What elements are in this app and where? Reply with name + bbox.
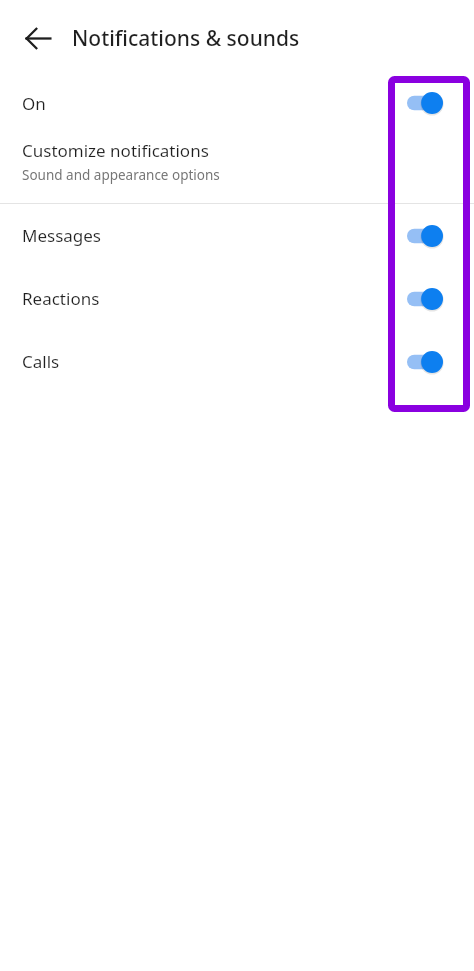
staticText: Sound and appearance options	[22, 166, 220, 184]
button[interactable]: On	[0, 76, 474, 130]
staticText: Reactions	[22, 287, 100, 310]
button[interactable]: Back	[14, 14, 62, 62]
button[interactable]: Calls	[0, 330, 474, 393]
button[interactable]: Customize notifications	[0, 130, 474, 192]
staticText: Notifications & sounds	[72, 24, 300, 53]
staticText: Calls	[22, 350, 60, 373]
staticText: Messages	[22, 224, 102, 247]
button[interactable]: Toggle	[407, 286, 443, 312]
button[interactable]: Toggle	[407, 349, 443, 375]
button[interactable]: Toggle	[407, 223, 443, 249]
staticText: On	[22, 92, 46, 115]
button[interactable]: Reactions	[0, 267, 474, 330]
staticText: Customize notifications	[22, 139, 209, 162]
button[interactable]: Toggle	[407, 90, 443, 116]
button[interactable]: Messages	[0, 204, 474, 267]
